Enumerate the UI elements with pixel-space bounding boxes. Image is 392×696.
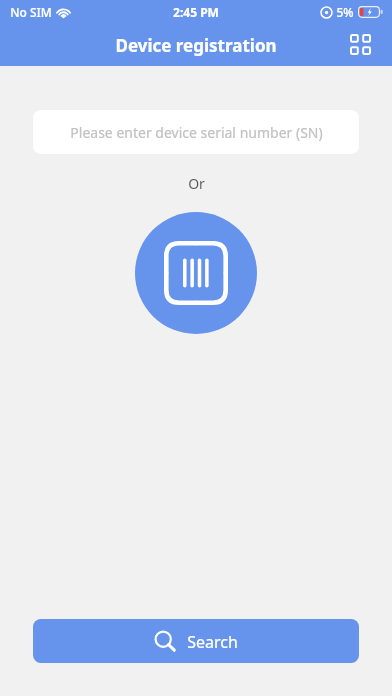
staticText: 2:45 PM (173, 4, 219, 20)
button[interactable]: Please enter device serial number (SN) (33, 110, 359, 154)
staticText: Device registration (115, 34, 277, 57)
staticText: No SIM (10, 4, 52, 20)
staticText: Search (187, 631, 238, 653)
button[interactable]: Scan barcode (135, 212, 257, 334)
button[interactable]: Apps grid (342, 26, 378, 62)
staticText: Or (188, 174, 205, 193)
button[interactable]: Search (33, 619, 359, 663)
staticText: 5% (336, 4, 354, 20)
staticText: Please enter device serial number (SN) (70, 123, 323, 142)
